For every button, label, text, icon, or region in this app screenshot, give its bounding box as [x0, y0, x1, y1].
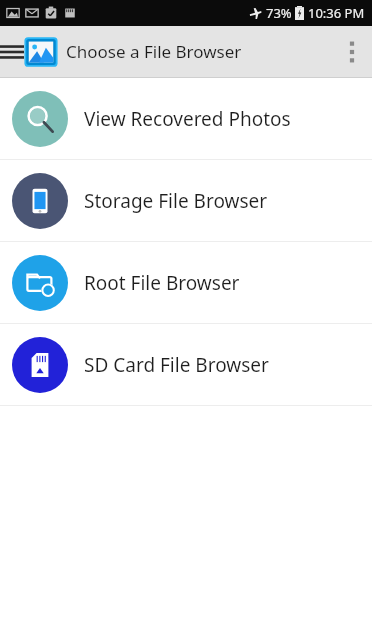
staticText: Choose a File Browser [66, 40, 242, 63]
button[interactable]: SD Card File Browser [0, 324, 372, 405]
staticText: 10:36 PM [308, 4, 365, 22]
staticText: Root File Browser [84, 270, 240, 296]
button[interactable]: Storage File Browser [0, 160, 372, 241]
button[interactable]: More options [332, 28, 372, 76]
staticText: Storage File Browser [84, 188, 268, 214]
button[interactable]: Root File Browser [0, 242, 372, 323]
staticText: View Recovered Photos [84, 106, 291, 132]
staticText: SD Card File Browser [84, 352, 269, 378]
button[interactable]: View Recovered Photos [0, 78, 372, 159]
button[interactable]: Navigation drawer [0, 30, 24, 74]
staticText: 73% [266, 4, 292, 22]
